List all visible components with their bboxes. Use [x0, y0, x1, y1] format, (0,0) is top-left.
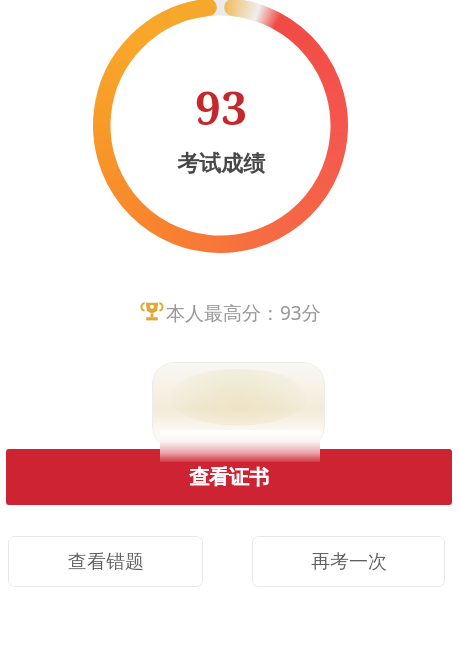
- staticText: 本人最高分：93分: [166, 300, 321, 326]
- button[interactable]: 查看错题: [8, 536, 203, 587]
- button[interactable]: [152, 362, 325, 448]
- staticText: 再考一次: [311, 550, 387, 574]
- button[interactable]: 查看证书: [6, 449, 452, 505]
- staticText: 93: [195, 76, 247, 139]
- staticText: 查看错题: [68, 550, 144, 574]
- staticText: 查看证书: [189, 465, 269, 490]
- button[interactable]: 再考一次: [252, 536, 445, 587]
- staticText: 考试成绩: [177, 150, 265, 178]
